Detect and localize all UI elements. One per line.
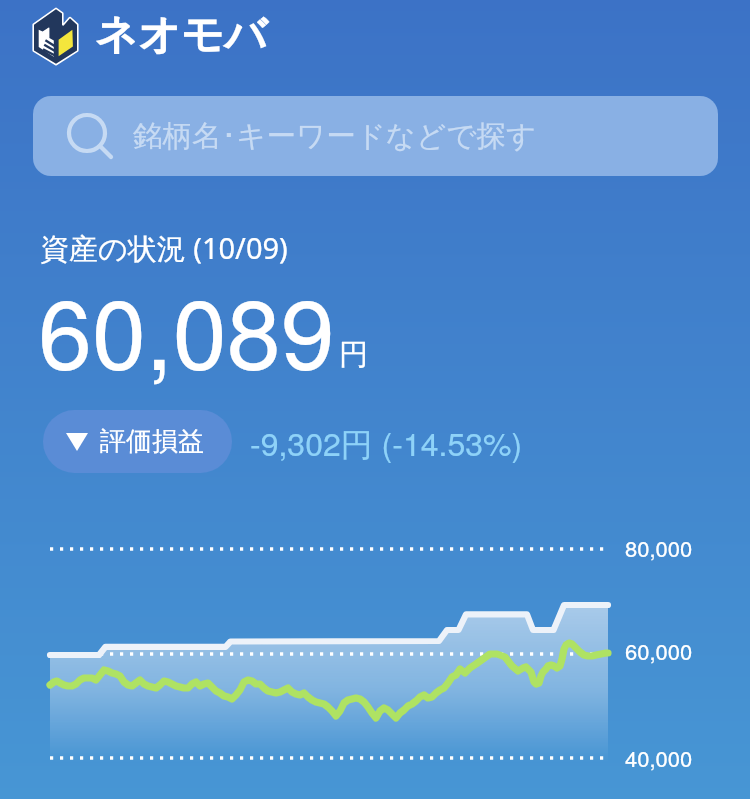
staticText: ネオモバ bbox=[95, 9, 267, 62]
other: Search bbox=[67, 113, 113, 159]
staticText: 80,000 bbox=[625, 532, 693, 564]
staticText: 資産の状況 (10/09) bbox=[40, 228, 288, 268]
staticText: 40,000 bbox=[625, 742, 693, 774]
staticText: 円 bbox=[339, 336, 368, 373]
button[interactable]: 評価損益 bbox=[43, 410, 232, 473]
staticText: -9,302円 (-14.53%) bbox=[250, 419, 523, 465]
staticText: 評価損益 bbox=[100, 425, 204, 458]
staticText: 60,000 bbox=[625, 635, 693, 667]
staticText: 銘柄名･キーワードなどで探す bbox=[133, 118, 537, 155]
staticText: 60,089 bbox=[38, 259, 335, 398]
button[interactable]: ネオモバ bbox=[12, 0, 292, 68]
button[interactable]: Search bbox=[33, 96, 718, 176]
